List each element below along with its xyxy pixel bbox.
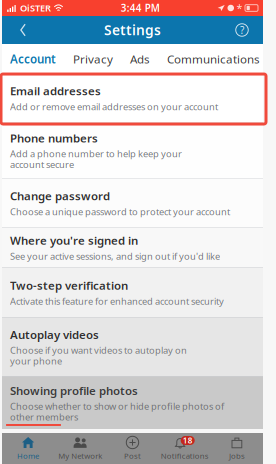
staticText: Showing profile photos <box>10 383 138 398</box>
staticText: Email addresses <box>10 83 101 99</box>
button[interactable]: Jobs <box>211 433 263 463</box>
button[interactable]: Email addresses <box>2 74 263 122</box>
staticText: 3:44 PM <box>121 1 160 15</box>
staticText: Post <box>124 450 141 461</box>
staticText: Jobs <box>229 450 245 461</box>
button[interactable]: Two-step verification <box>2 268 263 317</box>
button[interactable]: Showing profile photos <box>2 377 263 429</box>
button[interactable]: Help <box>227 16 257 44</box>
staticText: Autoplay videos <box>10 327 99 342</box>
button[interactable]: Post <box>106 433 159 463</box>
button[interactable]: Privacy <box>73 44 113 74</box>
staticText: Two-step verification <box>10 278 128 293</box>
staticText: OiSTER <box>20 2 51 14</box>
button[interactable]: Autoplay videos <box>2 318 263 376</box>
staticText: My Network <box>58 450 102 461</box>
button[interactable]: My Network <box>54 433 106 463</box>
staticText: Choose a unique password to protect your… <box>10 205 230 218</box>
staticText: * <box>236 1 242 15</box>
button[interactable]: Back <box>8 16 38 44</box>
staticText: Settings <box>104 21 161 39</box>
staticText: Add or remove email addresses on your ac… <box>10 100 218 113</box>
staticText: Where you're signed in <box>10 233 138 248</box>
button[interactable]: Account <box>10 44 56 74</box>
staticText: Notifications <box>161 450 209 461</box>
staticText: Choose if you want videos to autoplay on… <box>10 344 187 367</box>
button[interactable]: 18 <box>159 433 211 463</box>
staticText: Change password <box>10 188 110 204</box>
staticText: ? <box>240 23 244 37</box>
staticText: 18 <box>183 435 193 446</box>
staticText: Phone numbers <box>10 130 98 146</box>
button[interactable]: Ads <box>130 44 150 74</box>
button[interactable]: Communications <box>167 44 260 74</box>
staticText: Account <box>10 51 56 67</box>
staticText: Home <box>17 450 39 461</box>
staticText: Activate this feature for enhanced accou… <box>10 295 224 307</box>
button[interactable]: Change password <box>2 179 263 227</box>
staticText: Ads <box>130 51 150 67</box>
staticText: Add a phone number to help keep your acc… <box>10 147 182 171</box>
button[interactable]: Home <box>2 433 54 463</box>
button[interactable]: Where you're signed in <box>2 228 263 267</box>
staticText: Communications <box>167 51 260 67</box>
staticText: See your active sessions, and sign out i… <box>10 250 220 262</box>
staticText: Privacy <box>73 51 113 67</box>
staticText: Choose whether to show or hide profile p… <box>10 400 224 423</box>
button[interactable]: Phone numbers <box>2 123 263 178</box>
